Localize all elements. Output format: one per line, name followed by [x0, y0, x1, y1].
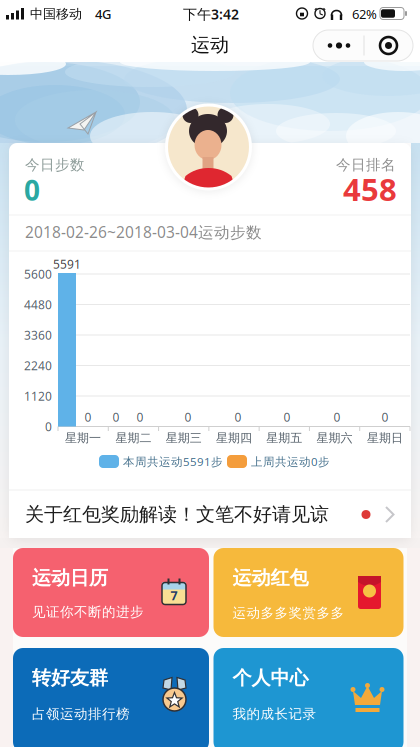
staticText: 星期四 [216, 431, 252, 445]
staticText: 0 [45, 418, 52, 434]
button[interactable]: 更多 [313, 30, 364, 61]
staticText: 本周共运动5591步 [123, 454, 223, 469]
staticText: 5591 [53, 256, 81, 272]
staticText: 运动红包 [232, 566, 308, 590]
staticText: 0 [24, 171, 40, 209]
staticText: 2018-02-26~2018-03-04运动步数 [25, 222, 262, 242]
staticText: 星期日 [367, 431, 403, 445]
button[interactable]: 主页 [364, 30, 413, 61]
staticText: 今日步数 [25, 156, 85, 174]
button[interactable]: 运动日历 [13, 548, 209, 637]
staticText: 4G [95, 5, 111, 23]
staticText: 0 [381, 409, 388, 425]
staticText: 4480 [24, 296, 52, 312]
staticText: 星期二 [115, 431, 151, 445]
staticText: 0 [283, 409, 290, 425]
staticText: 占领运动排行榜 [32, 706, 130, 722]
staticText: 关于红包奖励解读！文笔不好请见谅 [25, 503, 329, 526]
staticText: 星期六 [317, 431, 353, 445]
staticText: 0 [333, 409, 340, 425]
staticText: 上周共运动0步 [251, 454, 330, 469]
staticText: 运动日历 [32, 566, 108, 590]
staticText: 今日排名 [336, 156, 396, 174]
button[interactable]: 转好友群 [13, 648, 209, 747]
staticText: 运动 [191, 33, 229, 57]
staticText: 7 [170, 587, 177, 604]
staticText: 星期一 [65, 431, 101, 445]
staticText: 星期五 [266, 431, 302, 445]
staticText: 见证你不断的进步 [32, 604, 144, 620]
button[interactable]: 个人中心 [213, 648, 403, 747]
staticText: 1120 [24, 388, 52, 404]
staticText: 458 [343, 168, 397, 210]
staticText: 0 [136, 409, 143, 425]
staticText: 中国移动 [30, 6, 82, 22]
staticText: 下午3:42 [183, 5, 239, 23]
staticText: 0 [112, 409, 119, 425]
staticText: 我的成长记录 [232, 706, 316, 722]
staticText: 3360 [24, 327, 52, 343]
staticText: 运动多多奖赏多多 [232, 605, 344, 621]
staticText: 62% [352, 5, 377, 23]
staticText: 0 [84, 409, 91, 425]
staticText: 个人中心 [232, 666, 308, 690]
staticText: 5600 [24, 266, 52, 282]
staticText: 2240 [24, 357, 52, 373]
staticText: 转好友群 [32, 666, 108, 690]
staticText: 0 [234, 409, 241, 425]
button[interactable]: 运动红包 [213, 548, 403, 637]
button[interactable]: 关于红包奖励解读！文笔不好请见谅 [9, 491, 411, 538]
staticText: 0 [184, 409, 191, 425]
staticText: 星期三 [166, 431, 202, 445]
